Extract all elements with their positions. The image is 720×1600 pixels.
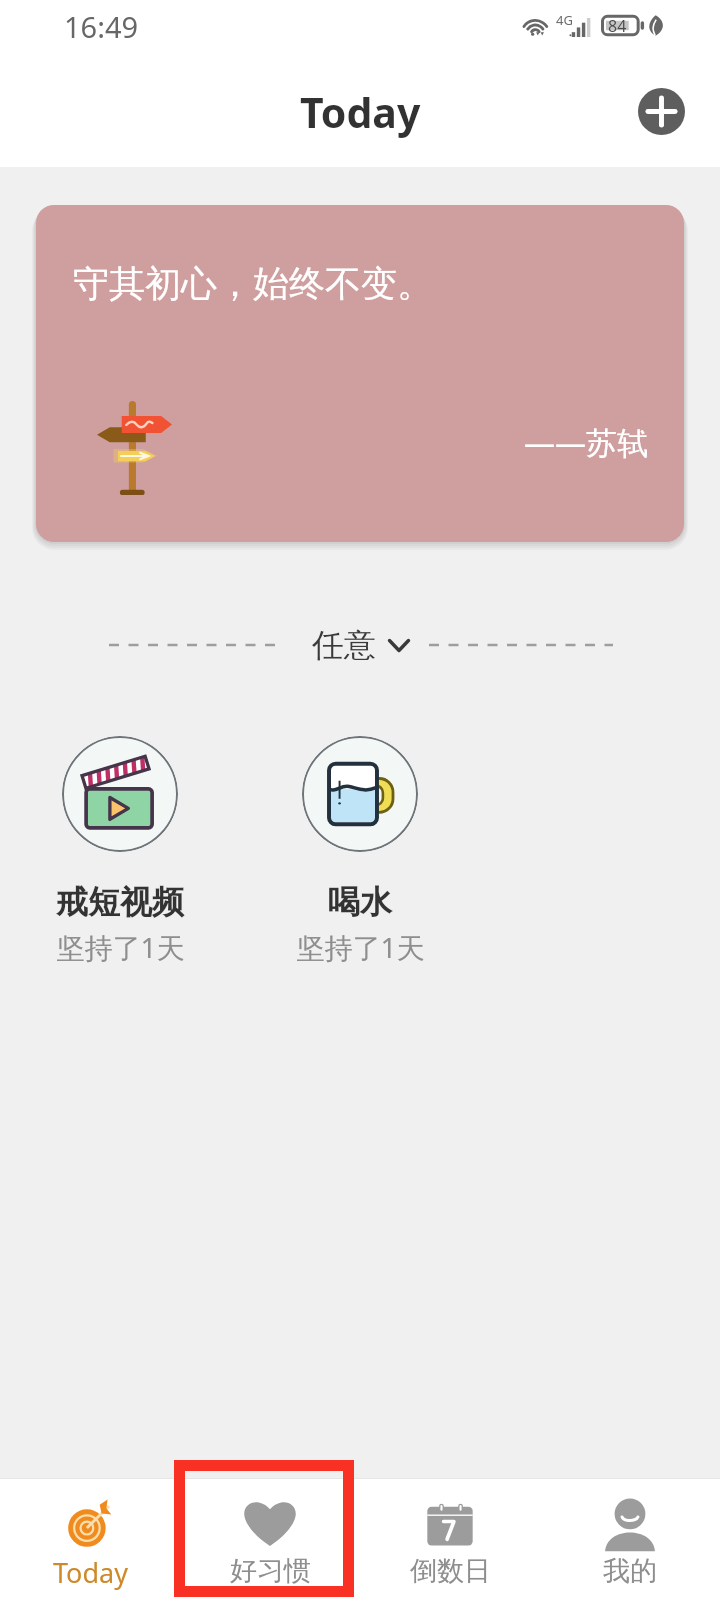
button[interactable]: 任意 (312, 625, 410, 665)
staticText: 坚持了1天 (296, 928, 425, 966)
button[interactable]: 守其初心，始终不变。 (36, 205, 684, 542)
button[interactable]: 好习惯 (180, 1479, 360, 1600)
staticText: 喝水 (328, 882, 392, 922)
staticText: 守其初心，始终不变。 (73, 261, 433, 306)
button[interactable]: Today (0, 1479, 180, 1600)
staticText: 戒短视频 (56, 882, 184, 922)
button[interactable]: 喝水 (240, 736, 480, 966)
button[interactable]: 我的 (540, 1479, 720, 1600)
staticText: 16:49 (64, 7, 139, 46)
button[interactable]: Add (638, 88, 685, 135)
staticText: 4G (556, 11, 573, 29)
button[interactable]: 倒数日 (360, 1479, 540, 1600)
staticText: Today (53, 1554, 128, 1591)
staticText: 坚持了1天 (56, 928, 185, 966)
staticText: ——苏轼 (524, 421, 648, 463)
staticText: 任意 (312, 625, 376, 665)
staticText: Today (300, 84, 421, 140)
staticText: 我的 (603, 1554, 657, 1588)
staticText: 倒数日 (410, 1554, 491, 1588)
staticText: 好习惯 (230, 1554, 311, 1588)
staticText: 84 (608, 15, 627, 37)
button[interactable]: 戒短视频 (0, 736, 240, 966)
